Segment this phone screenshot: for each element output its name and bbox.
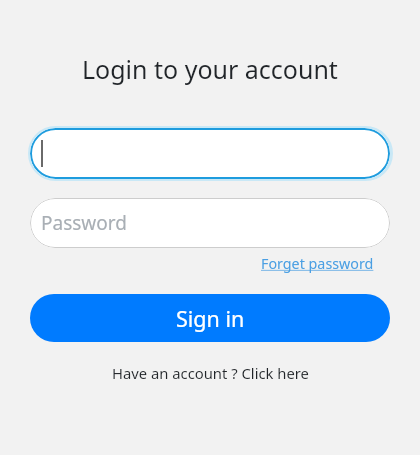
button[interactable]: Sign in	[30, 294, 390, 342]
button[interactable]	[30, 128, 390, 179]
button[interactable]: Have an account ? Click here	[112, 363, 309, 383]
staticText: Sign in	[176, 304, 245, 333]
staticText: Password	[41, 210, 127, 236]
button[interactable]: Forget password	[261, 254, 374, 273]
button[interactable]: Password	[30, 198, 390, 248]
staticText: Login to your account	[82, 52, 338, 86]
